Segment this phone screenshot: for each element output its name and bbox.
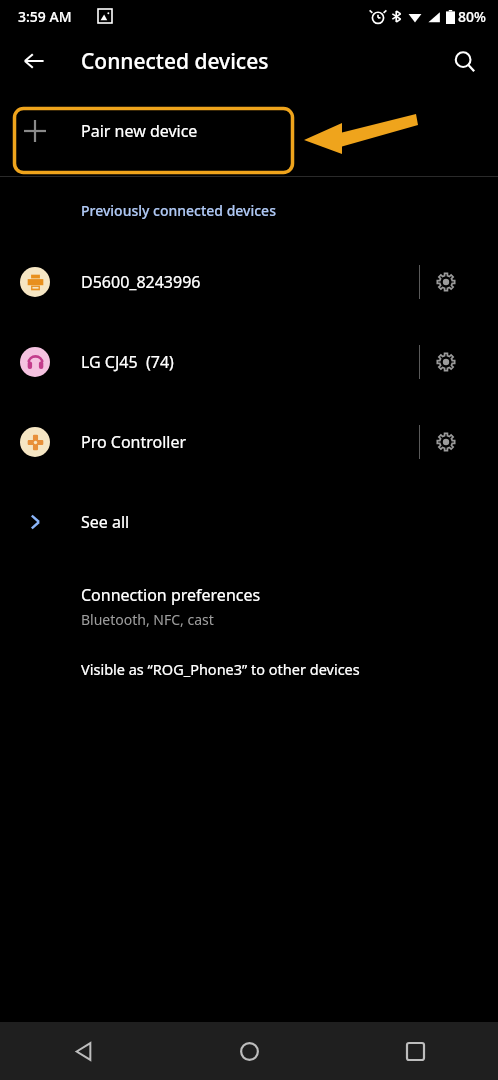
staticText: Connected devices	[81, 47, 269, 76]
button[interactable]: Connection preferences	[0, 580, 498, 633]
staticText: Pair new device	[81, 120, 198, 142]
staticText: 80%	[458, 7, 486, 26]
button[interactable]: Search	[438, 35, 490, 87]
button[interactable]: Device settings for D5600_8243996	[424, 260, 468, 304]
button[interactable]: Pair new device	[0, 100, 498, 162]
button[interactable]: Back	[0, 1022, 166, 1080]
staticText: 3:59 AM	[18, 7, 72, 26]
button[interactable]: LG CJ45 (74)	[0, 322, 498, 402]
staticText: LG CJ45 (74)	[81, 351, 174, 373]
staticText: Visible as “ROG_Phone3” to other devices	[81, 659, 360, 679]
staticText: Previously connected devices	[81, 201, 276, 220]
staticText: D5600_8243996	[81, 271, 201, 293]
button[interactable]: Pro Controller	[0, 402, 498, 482]
button[interactable]: Device settings for LG CJ45 (74)	[424, 340, 468, 384]
staticText: Pro Controller	[81, 431, 187, 453]
button[interactable]: D5600_8243996	[0, 242, 498, 322]
button[interactable]: Device settings for Pro Controller	[424, 420, 468, 464]
button[interactable]: See all	[0, 482, 498, 562]
button[interactable]: Recent apps	[332, 1022, 498, 1080]
button[interactable]: Home	[166, 1022, 332, 1080]
staticText: Connection preferences	[81, 584, 261, 606]
staticText: Bluetooth, NFC, cast	[81, 610, 214, 629]
button[interactable]: Back	[8, 35, 60, 87]
staticText: See all	[81, 511, 130, 533]
